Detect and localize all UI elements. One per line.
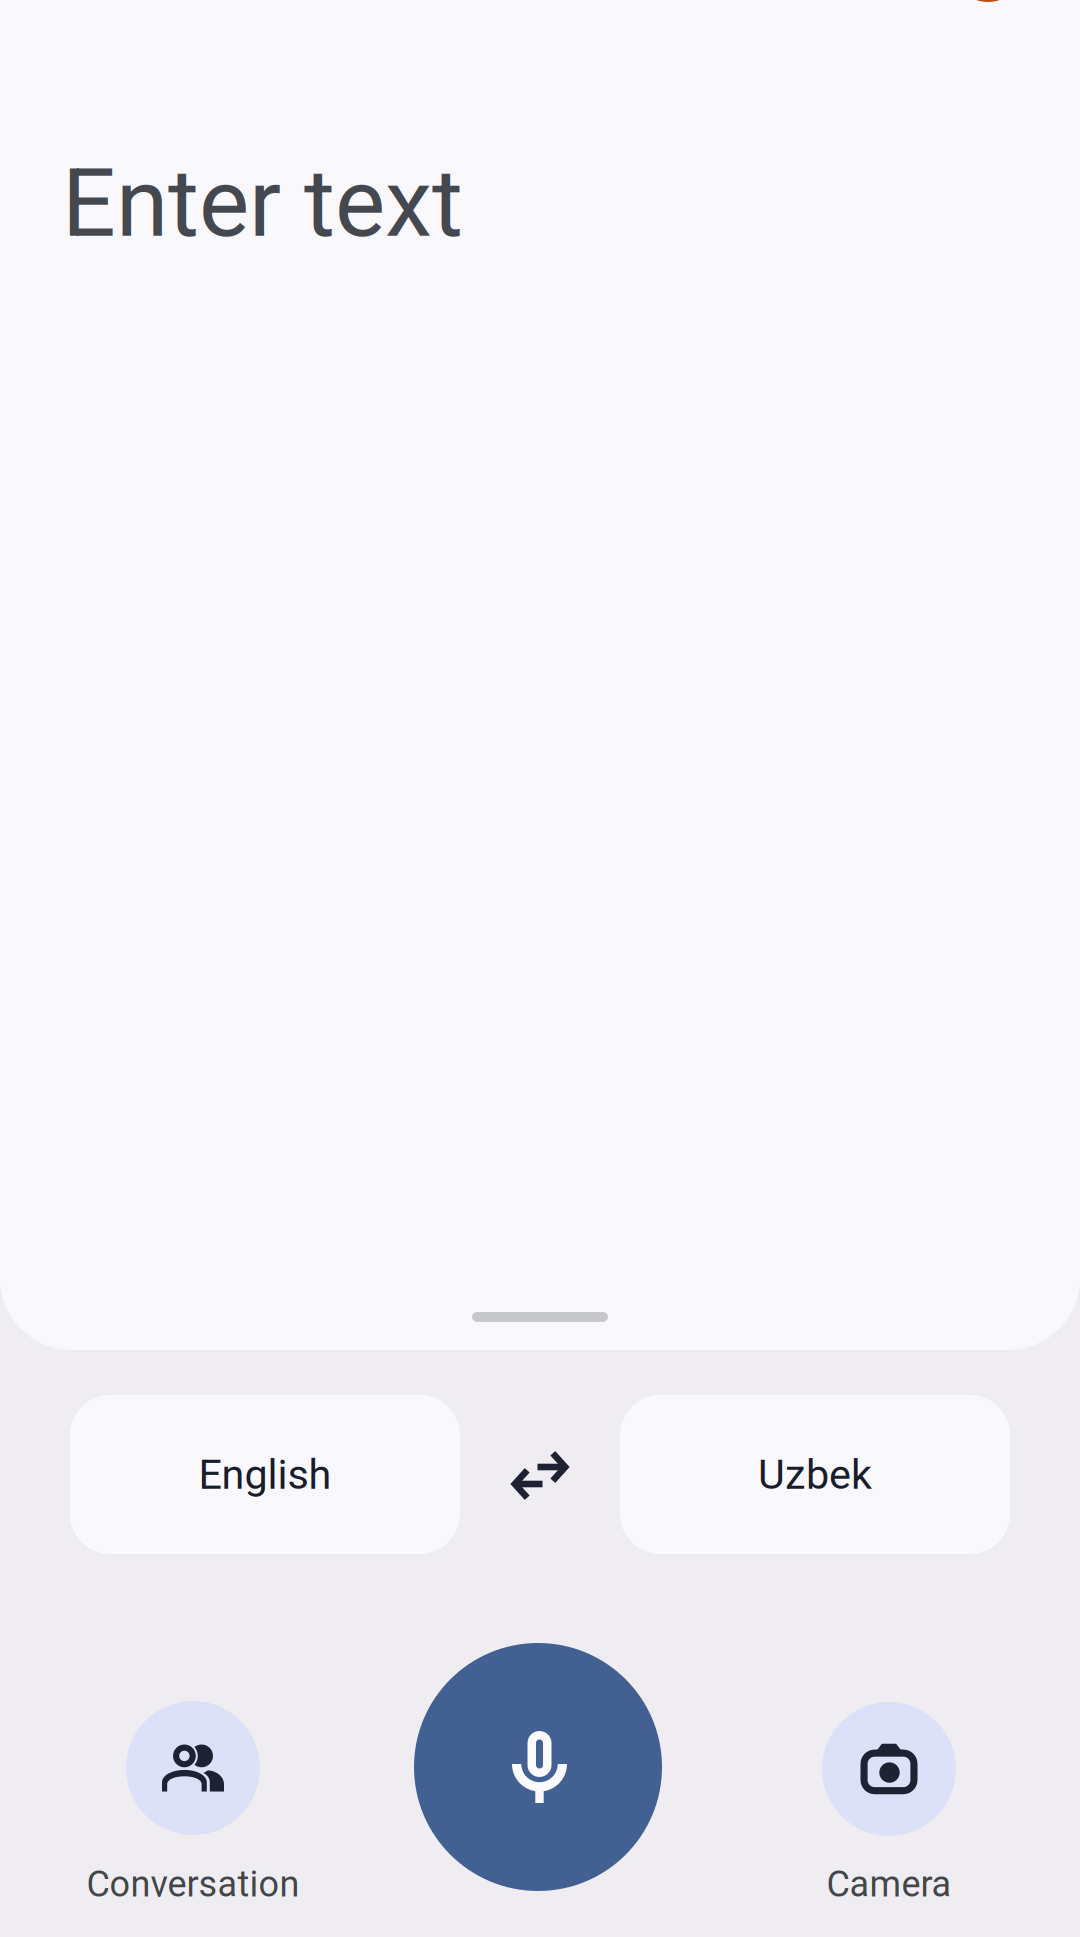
staticText: English xyxy=(198,1450,331,1499)
staticText: Conversation xyxy=(86,1863,299,1905)
button[interactable]: Account xyxy=(952,0,1024,2)
button[interactable]: Conversation xyxy=(63,1701,323,1905)
button[interactable]: Enter text xyxy=(62,148,1006,1288)
button[interactable]: Camera xyxy=(799,1702,979,1905)
staticText: Camera xyxy=(826,1863,951,1905)
staticText: Enter text xyxy=(62,148,463,259)
staticText: Uzbek xyxy=(758,1450,872,1499)
button[interactable]: Uzbek xyxy=(620,1395,1010,1554)
button[interactable]: Voice input xyxy=(414,1643,662,1891)
button[interactable]: English xyxy=(70,1395,460,1554)
button[interactable]: Swap languages xyxy=(460,1395,620,1554)
